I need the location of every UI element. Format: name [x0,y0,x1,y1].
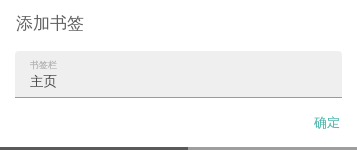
staticText: 确定 [314,114,340,130]
button[interactable]: 书签栏 [15,51,342,98]
button[interactable]: 确定 [306,107,348,137]
other: Horizontal scroll position [0,147,357,150]
staticText: 主页 [30,73,57,90]
staticText: 书签栏 [30,59,57,70]
staticText: 添加书签 [16,13,84,34]
